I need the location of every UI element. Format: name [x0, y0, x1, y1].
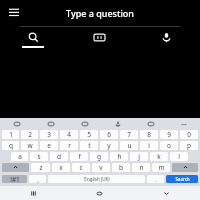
staticText: m: [158, 163, 165, 172]
button[interactable]: 4: [60, 130, 78, 139]
button[interactable]: Shift: [2, 163, 29, 172]
button[interactable]: 3: [40, 130, 58, 139]
staticText: z: [39, 163, 43, 172]
staticText: !#1: [10, 175, 20, 183]
staticText: 7: [127, 130, 131, 139]
button[interactable]: 9: [160, 130, 178, 139]
staticText: Search: [175, 176, 190, 182]
button[interactable]: m: [152, 163, 170, 172]
staticText: 4: [67, 130, 71, 139]
button[interactable]: p: [180, 141, 198, 150]
button[interactable]: q: [2, 141, 19, 150]
button[interactable]: Voice: [133, 27, 200, 53]
staticText: r: [68, 141, 71, 150]
button[interactable]: x: [52, 163, 70, 172]
staticText: 6: [107, 130, 111, 139]
button[interactable]: f: [70, 152, 88, 161]
staticText: u: [127, 141, 132, 150]
button[interactable]: 1: [2, 130, 19, 139]
staticText: English (UK): [84, 176, 110, 182]
button[interactable]: w: [21, 141, 38, 150]
button[interactable]: .: [147, 175, 164, 183]
staticText: Type a question: [66, 7, 134, 19]
button[interactable]: 0: [180, 130, 198, 139]
button[interactable]: c: [72, 163, 90, 172]
button[interactable]: v: [92, 163, 110, 172]
staticText: f: [78, 152, 81, 161]
staticText: w: [27, 141, 33, 150]
button[interactable]: Search: [166, 175, 198, 183]
button[interactable]: i: [140, 141, 158, 150]
button[interactable]: Toolbar 5: [167, 118, 200, 129]
staticText: x: [59, 163, 63, 172]
button[interactable]: 7: [120, 130, 138, 139]
button[interactable]: u: [120, 141, 138, 150]
button[interactable]: l: [170, 152, 188, 161]
button[interactable]: k: [150, 152, 168, 161]
button[interactable]: o: [160, 141, 178, 150]
button[interactable]: a: [11, 152, 28, 161]
staticText: v: [99, 163, 103, 172]
button[interactable]: j: [130, 152, 148, 161]
staticText: 0: [187, 130, 191, 139]
button[interactable]: Toolbar 3: [101, 118, 134, 129]
staticText: ,: [37, 175, 39, 183]
button[interactable]: Toolbar 2: [68, 118, 101, 129]
staticText: c: [79, 163, 83, 172]
button[interactable]: n: [132, 163, 150, 172]
button[interactable]: y: [100, 141, 118, 150]
staticText: .: [155, 175, 157, 183]
staticText: 9: [167, 130, 171, 139]
button[interactable]: Toolbar 1: [34, 118, 68, 129]
staticText: g: [97, 152, 101, 161]
button[interactable]: Recents: [0, 186, 66, 200]
button[interactable]: t: [80, 141, 98, 150]
button[interactable]: 2: [21, 130, 38, 139]
staticText: s: [37, 152, 41, 161]
button[interactable]: ,: [29, 175, 46, 183]
button[interactable]: r: [60, 141, 78, 150]
button[interactable]: 8: [140, 130, 158, 139]
button[interactable]: h: [110, 152, 128, 161]
button[interactable]: Home: [66, 186, 133, 200]
button[interactable]: s: [30, 152, 48, 161]
button[interactable]: Search: [0, 27, 66, 53]
button[interactable]: 5: [80, 130, 98, 139]
staticText: 3: [47, 130, 51, 139]
staticText: l: [178, 152, 180, 161]
button[interactable]: Menu: [5, 4, 23, 22]
staticText: d: [57, 152, 61, 161]
button[interactable]: !#1: [2, 175, 27, 183]
button[interactable]: Toolbar 4: [134, 118, 167, 129]
button[interactable]: g: [90, 152, 108, 161]
staticText: i: [148, 141, 150, 150]
button[interactable]: d: [50, 152, 68, 161]
button[interactable]: English (UK): [48, 175, 145, 183]
staticText: e: [47, 141, 51, 150]
staticText: 2: [28, 130, 32, 139]
button[interactable]: 6: [100, 130, 118, 139]
staticText: 8: [147, 130, 151, 139]
button[interactable]: b: [112, 163, 130, 172]
staticText: t: [88, 141, 91, 150]
button[interactable]: Toolbar 0: [0, 118, 34, 129]
staticText: a: [18, 152, 22, 161]
staticText: q: [9, 141, 13, 150]
button[interactable]: e: [40, 141, 58, 150]
button[interactable]: Backspace: [172, 163, 198, 172]
staticText: h: [117, 152, 122, 161]
staticText: y: [107, 141, 111, 150]
button[interactable]: Translate: [66, 27, 133, 53]
staticText: j: [138, 152, 140, 161]
staticText: o: [167, 141, 171, 150]
staticText: 5: [87, 130, 91, 139]
staticText: p: [187, 141, 191, 150]
button[interactable]: Back: [133, 186, 200, 200]
staticText: b: [119, 163, 123, 172]
staticText: 1: [9, 130, 13, 139]
staticText: n: [139, 163, 144, 172]
button[interactable]: z: [31, 163, 50, 172]
staticText: k: [157, 152, 161, 161]
